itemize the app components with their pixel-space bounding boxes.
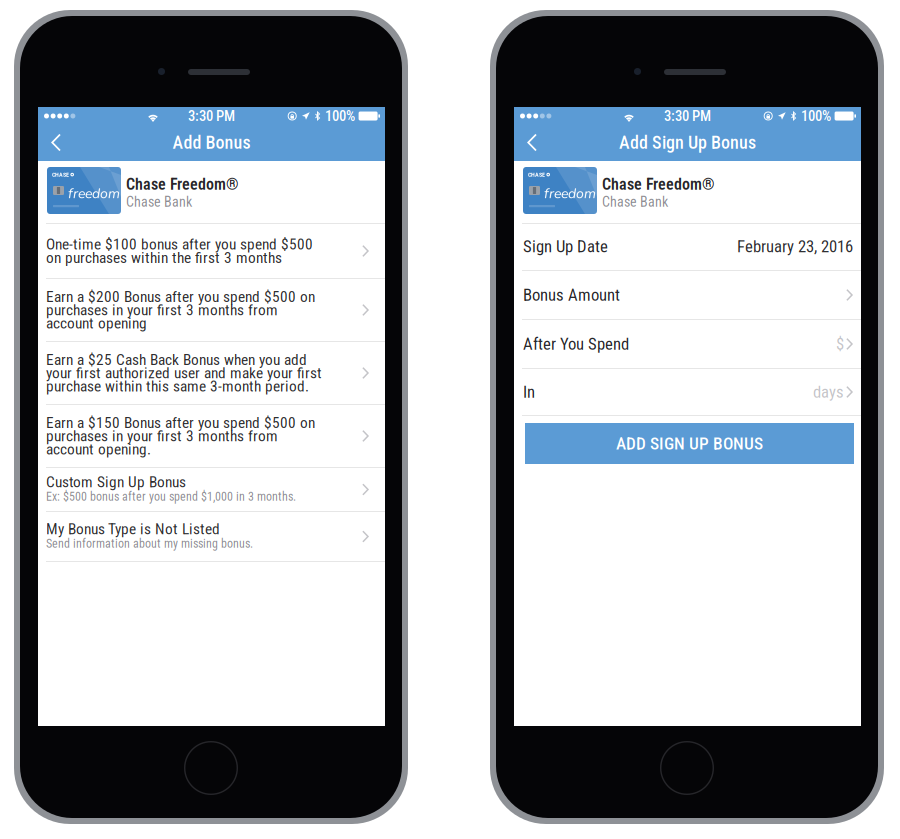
staticText: Chase Bank (126, 194, 192, 210)
button[interactable]: My Bonus Type is Not Listed (38, 512, 385, 562)
staticText: Add Sign Up Bonus (619, 132, 756, 153)
staticText: After You Spend (523, 334, 629, 354)
staticText: Earn a $200 Bonus after you spend $500 o… (46, 290, 315, 330)
button[interactable]: Custom Sign Up Bonus (38, 468, 385, 512)
staticText: CHASE (52, 171, 69, 178)
staticText: 100% (801, 107, 831, 125)
button[interactable]: Earn a $25 Cash Back Bonus when you add … (38, 342, 385, 405)
staticText: Chase Freedom® (602, 175, 715, 194)
staticText: My Bonus Type is Not Listed (46, 522, 220, 536)
button[interactable]: Back (38, 124, 74, 160)
staticText: ADD SIGN UP BONUS (616, 433, 763, 454)
button[interactable]: Sign Up Date (514, 223, 861, 271)
staticText: days (813, 382, 844, 402)
staticText: Earn a $25 Cash Back Bonus when you add … (46, 353, 322, 393)
staticText: One-time $100 bonus after you spend $500… (46, 238, 313, 264)
button[interactable]: Earn a $150 Bonus after you spend $500 o… (38, 405, 385, 468)
staticText: Add Bonus (172, 132, 250, 153)
button[interactable]: Earn a $200 Bonus after you spend $500 o… (38, 279, 385, 342)
button[interactable]: In (514, 369, 861, 416)
button[interactable]: After You Spend (514, 320, 861, 369)
staticText: freedom (68, 184, 120, 203)
staticText: Earn a $150 Bonus after you spend $500 o… (46, 416, 315, 456)
staticText: February 23, 2016 (737, 237, 853, 256)
button[interactable]: Back (514, 124, 550, 160)
staticText: 3:30 PM (188, 107, 235, 125)
staticText: freedom (544, 184, 596, 203)
staticText: Chase Bank (602, 194, 668, 210)
staticText: $ (836, 334, 844, 354)
staticText: CHASE (528, 171, 545, 178)
staticText: 100% (325, 107, 355, 125)
staticText: Chase Freedom® (126, 175, 239, 194)
staticText: Sign Up Date (523, 237, 608, 256)
staticText: In (523, 382, 535, 402)
staticText: 3:30 PM (664, 107, 711, 125)
staticText: Custom Sign Up Bonus (46, 475, 186, 489)
button[interactable]: Bonus Amount (514, 271, 861, 320)
button[interactable]: ADD SIGN UP BONUS (525, 423, 854, 464)
staticText: Bonus Amount (523, 285, 620, 305)
staticText: Send information about my missing bonus. (46, 537, 253, 551)
button[interactable]: One-time $100 bonus after you spend $500… (38, 224, 385, 279)
staticText: Ex: $500 bonus after you spend $1,000 in… (46, 490, 296, 504)
